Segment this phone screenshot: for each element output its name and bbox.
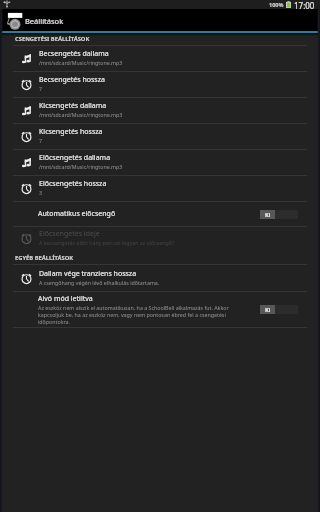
staticText: /mnt/sdcard/Music/ringtone.mp3 [39, 59, 123, 66]
staticText: 3 [39, 189, 43, 196]
staticText: Ki [265, 211, 271, 218]
staticText: Előcsengetés ideje [39, 229, 100, 239]
staticText: 7 [39, 137, 43, 144]
button[interactable]: Becsengetés hossza [0, 72, 320, 98]
staticText: Kicsengetés hossza [39, 127, 103, 137]
staticText: 100% [269, 1, 284, 8]
staticText: Ki [265, 306, 271, 313]
button[interactable]: Dallam vége tranziens hossza [0, 265, 320, 292]
staticText: Előcsengetés dallama [39, 153, 111, 163]
staticText: /mnt/sdcard/Music/ringtone.mp3 [39, 111, 123, 118]
staticText: Az eszköz nem alszik el automatikusan, h… [38, 304, 252, 325]
staticText: Beállítások [25, 16, 64, 26]
staticText: EGYÉB BEÁLLÍTÁSOK [15, 254, 74, 262]
button[interactable]: Kicsengetés hossza [0, 124, 320, 150]
staticText: Alvó mód letiltva [38, 294, 93, 304]
staticText: A becsengetés előtt hány perccel legyen … [39, 239, 175, 246]
button[interactable]: Kicsengetés dallama [0, 98, 320, 124]
staticText: CSENGETÉSI BEÁLLÍTÁSOK [15, 35, 90, 43]
staticText: Dallam vége tranziens hossza [39, 269, 137, 279]
button[interactable]: Automatikus előcsengő kapcsoló [260, 210, 298, 219]
button[interactable]: Előcsengetés dallama [0, 150, 320, 176]
button[interactable]: Alvó mód letiltva [0, 292, 320, 328]
staticText: 7 [39, 85, 43, 92]
button[interactable]: Automatikus előcsengő kapcsoló [260, 305, 298, 314]
staticText: /mnt/sdcard/Music/ringtone.mp3 [39, 163, 123, 170]
button[interactable]: Automatikus előcsengő [0, 202, 320, 227]
staticText: A csengőhang végén lévő elhalkulás időta… [39, 279, 160, 286]
button[interactable]: Előcsengetés hossza [0, 176, 320, 202]
staticText: Becsengetés hossza [39, 75, 105, 85]
button[interactable]: Előcsengetés ideje [0, 227, 320, 251]
staticText: Előcsengetés hossza [39, 179, 107, 189]
staticText: Kicsengetés dallama [39, 101, 107, 111]
button[interactable]: Becsengetés dallama [0, 46, 320, 72]
staticText: Becsengetés dallama [39, 49, 109, 59]
staticText: Automatikus előcsengő [38, 209, 116, 219]
staticText: 17:00 [294, 0, 315, 9]
